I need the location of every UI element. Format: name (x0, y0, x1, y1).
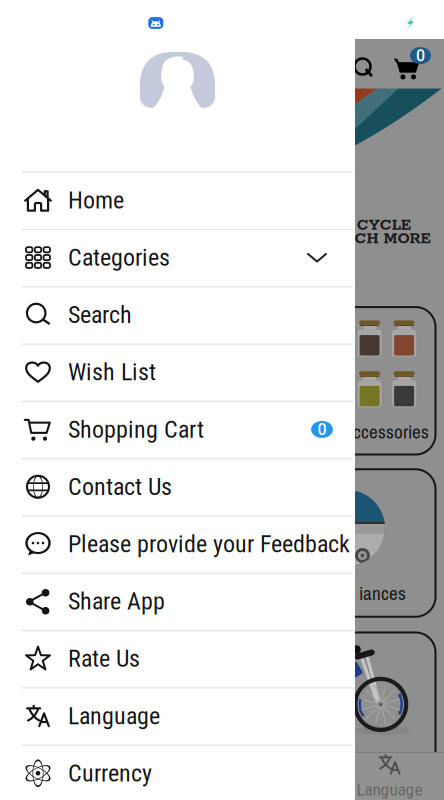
staticText: Categories (68, 243, 170, 272)
button[interactable]: Categories (0, 229, 355, 286)
staticText: Please provide your Feedback (68, 530, 350, 558)
staticText: 0 (416, 46, 425, 65)
button[interactable]: Rate Us (0, 630, 355, 687)
staticText: Shopping Cart (68, 415, 204, 443)
button[interactable]: Language (0, 687, 355, 745)
button[interactable]: Contact Us (0, 458, 355, 515)
button[interactable]: Please provide your Feedback (0, 515, 355, 573)
button[interactable]: Search (351, 55, 373, 77)
staticText: CYCLE (357, 216, 411, 235)
button[interactable]: Language (334, 753, 444, 799)
button[interactable]: Shopping Cart (0, 401, 355, 458)
staticText: Share App (68, 587, 165, 615)
staticText: iances (359, 580, 406, 606)
button[interactable]: Wish List (0, 343, 355, 401)
staticText: Contact Us (68, 473, 172, 501)
button[interactable]: Share App (0, 573, 355, 630)
staticText: Rate Us (68, 645, 140, 673)
staticText: CH MORE (354, 229, 430, 249)
staticText: Wish List (68, 358, 156, 386)
button[interactable]: Profile (140, 52, 215, 108)
staticText: Home (68, 186, 124, 214)
button[interactable]: Search (0, 286, 355, 343)
staticText: Search (68, 301, 132, 329)
button[interactable]: Currency (0, 745, 355, 800)
button[interactable]: Home (0, 172, 355, 229)
staticText: Currency (68, 759, 152, 787)
staticText: 0 (317, 420, 326, 439)
staticText: ccessories (353, 419, 429, 444)
staticText: Language (68, 702, 160, 730)
button[interactable]: Shopping cart (393, 58, 420, 79)
staticText: Language (356, 779, 422, 800)
